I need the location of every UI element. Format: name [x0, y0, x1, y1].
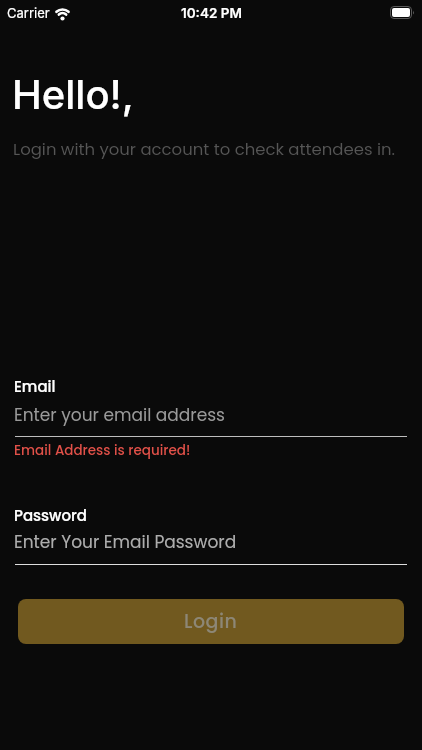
staticText: Hello!, — [12, 70, 134, 118]
staticText: Enter your email address — [14, 403, 225, 427]
staticText: Login with your account to check attende… — [13, 138, 396, 161]
staticText: Carrier — [7, 5, 50, 21]
staticText: Password — [14, 505, 87, 526]
staticText: Login — [184, 608, 238, 635]
button[interactable]: Login — [18, 599, 404, 644]
staticText: Email Address is required! — [14, 441, 191, 460]
staticText: 10:42 PM — [181, 5, 242, 21]
staticText: Email — [14, 376, 56, 397]
button[interactable]: Enter your email address — [14, 403, 407, 427]
button[interactable]: Enter Your Email Password — [14, 530, 407, 554]
staticText: Enter Your Email Password — [14, 530, 237, 554]
